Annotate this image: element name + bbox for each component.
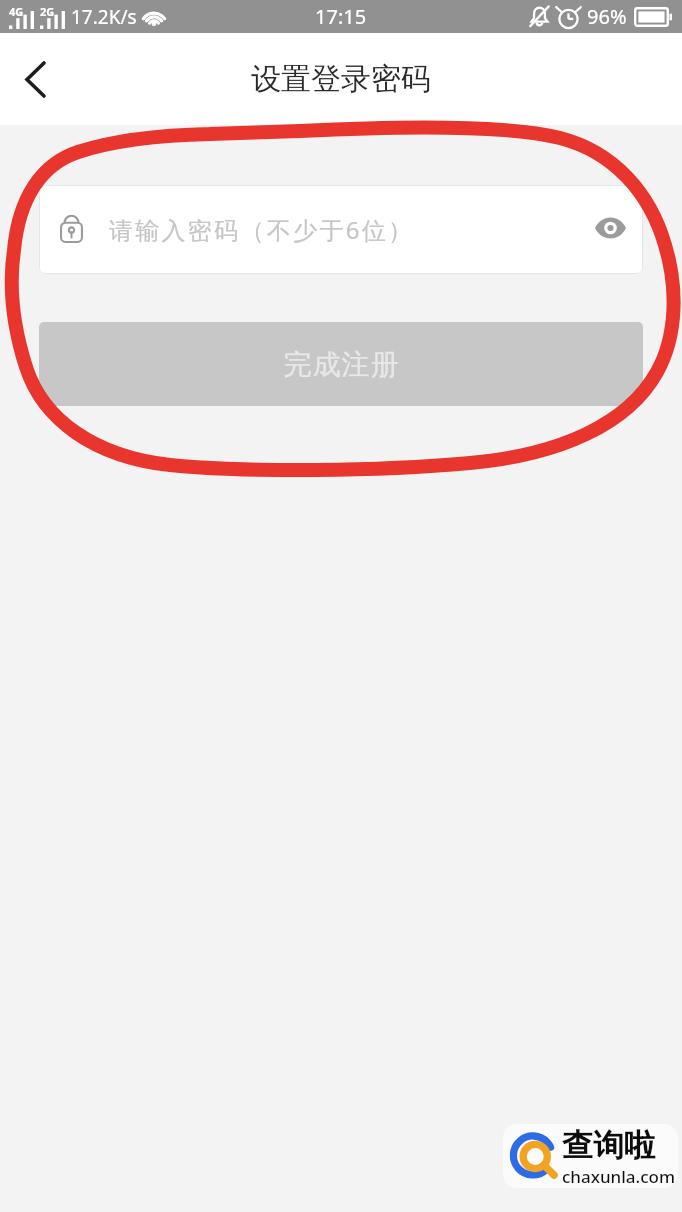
staticText: 完成注册 xyxy=(283,347,399,382)
button[interactable]: 请输入密码（不少于6位） xyxy=(39,185,643,274)
staticText: chaxunla.com xyxy=(562,1165,676,1188)
staticText: 96% xyxy=(587,3,627,30)
button[interactable]: Back xyxy=(7,51,64,108)
button[interactable]: Show password xyxy=(588,208,632,252)
staticText: 4G xyxy=(9,4,24,19)
button[interactable]: 完成注册 xyxy=(39,322,643,406)
staticText: 17:15 xyxy=(315,3,367,30)
staticText: 查询啦 xyxy=(562,1126,655,1165)
staticText: 17.2K/s xyxy=(71,4,137,30)
staticText: 2G xyxy=(40,4,55,19)
staticText: 设置登录密码 xyxy=(251,60,431,98)
staticText: 请输入密码（不少于6位） xyxy=(109,213,415,246)
